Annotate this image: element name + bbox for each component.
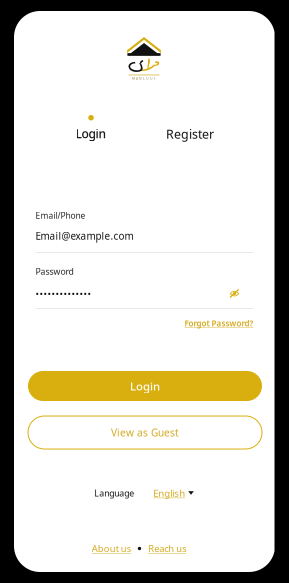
staticText: Email/Phone — [35, 210, 85, 221]
staticText: Login — [130, 378, 160, 394]
staticText: Login — [75, 125, 106, 142]
staticText: Reach us — [148, 542, 186, 555]
staticText: •••••••••••••• — [35, 287, 91, 300]
staticText: Email@example.com — [35, 229, 133, 243]
staticText: Language — [94, 487, 134, 499]
button[interactable]: English — [153, 486, 194, 500]
staticText: View as Guest — [111, 426, 179, 439]
button[interactable]: Register — [140, 115, 239, 143]
button[interactable]: Login — [41, 115, 140, 143]
staticText: English — [153, 486, 185, 500]
staticText: Register — [166, 125, 214, 142]
button[interactable]: View as Guest — [28, 416, 262, 449]
staticText: Forgot Password? — [184, 318, 253, 329]
staticText: M A N L O U F — [132, 76, 156, 81]
button[interactable]: Forgot Password? — [184, 318, 253, 329]
button[interactable]: Reach us — [148, 542, 186, 555]
button[interactable]: Show password — [226, 286, 253, 301]
staticText: Password — [35, 266, 73, 277]
staticText: About us — [92, 542, 131, 555]
button[interactable]: About us — [92, 542, 131, 555]
button[interactable]: Login — [28, 371, 262, 401]
